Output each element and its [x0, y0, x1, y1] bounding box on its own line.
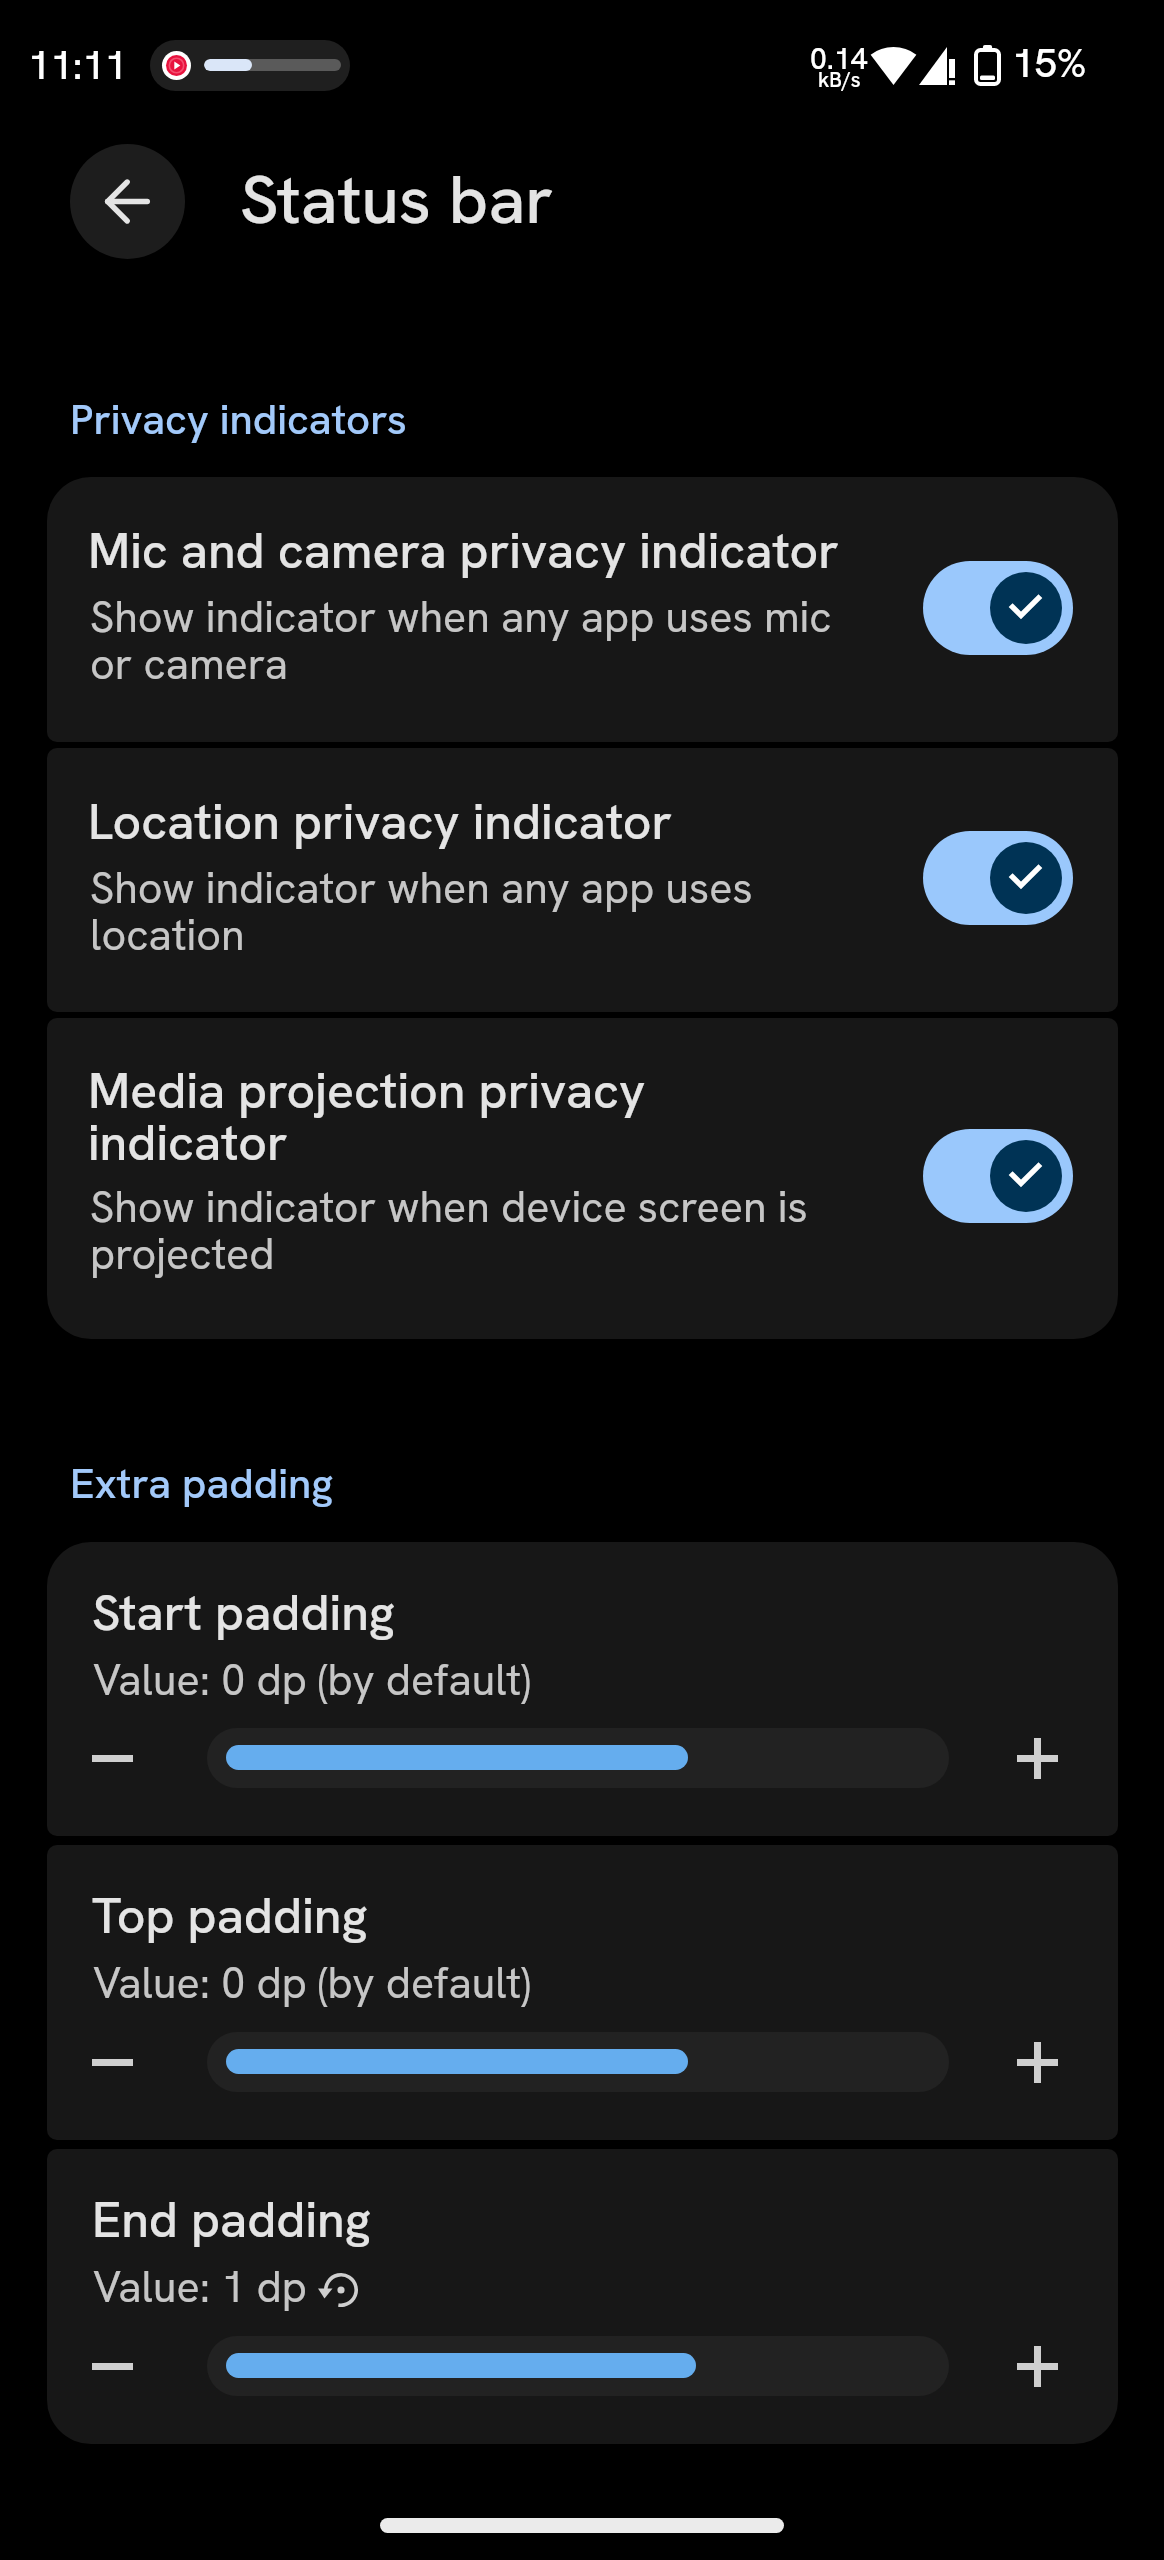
staticText: Value: 0 dp (by default): [93, 1955, 531, 2011]
button[interactable]: Increase: [977, 1716, 1097, 1800]
button[interactable]: Slider: [207, 1728, 949, 1788]
staticText: Start padding: [92, 1580, 395, 1645]
staticText: Value: 0 dp (by default): [93, 1652, 531, 1708]
staticText: Show indicator when any app uses: [90, 860, 753, 916]
staticText: Location privacy indicator: [88, 789, 673, 854]
staticText: Top padding: [92, 1883, 368, 1948]
staticText: or camera: [90, 636, 288, 692]
button[interactable]: Increase: [977, 2020, 1097, 2104]
button[interactable]: Reset to default: [311, 2260, 371, 2320]
button[interactable]: [47, 477, 1118, 742]
staticText: End padding: [92, 2187, 371, 2252]
staticText: 11:11: [28, 39, 128, 91]
button[interactable]: Toggle: [923, 831, 1073, 925]
button[interactable]: Decrease: [52, 1716, 172, 1800]
staticText: 15%: [1012, 37, 1087, 89]
button[interactable]: Slider: [207, 2336, 949, 2396]
staticText: Show indicator when any app uses mic: [90, 589, 832, 645]
button[interactable]: Decrease: [52, 2324, 172, 2408]
button[interactable]: Toggle: [923, 561, 1073, 655]
staticText: Privacy indicators: [70, 392, 407, 447]
button[interactable]: [47, 748, 1118, 1012]
button[interactable]: Increase: [977, 2324, 1097, 2408]
button[interactable]: Decrease: [52, 2020, 172, 2104]
button[interactable]: [47, 1542, 1118, 1836]
button[interactable]: Back: [70, 144, 185, 259]
staticText: projected: [90, 1226, 275, 1282]
button[interactable]: [47, 1018, 1118, 1339]
button[interactable]: Media player: [150, 40, 350, 91]
button[interactable]: [47, 1845, 1118, 2140]
button[interactable]: Slider: [207, 2032, 949, 2092]
staticText: Show indicator when device screen is: [90, 1179, 808, 1235]
staticText: location: [90, 907, 245, 963]
staticText: Value: 1 dp: [93, 2259, 307, 2315]
staticText: Media projection privacy: [88, 1058, 646, 1123]
staticText: Mic and camera privacy indicator: [88, 518, 839, 583]
staticText: Extra padding: [70, 1456, 333, 1511]
button[interactable]: Toggle: [923, 1129, 1073, 1223]
button[interactable]: [47, 2149, 1118, 2444]
staticText: kB/s: [818, 66, 861, 93]
staticText: 0.14: [810, 39, 868, 78]
staticText: Status bar: [240, 155, 554, 243]
staticText: indicator: [88, 1110, 288, 1175]
